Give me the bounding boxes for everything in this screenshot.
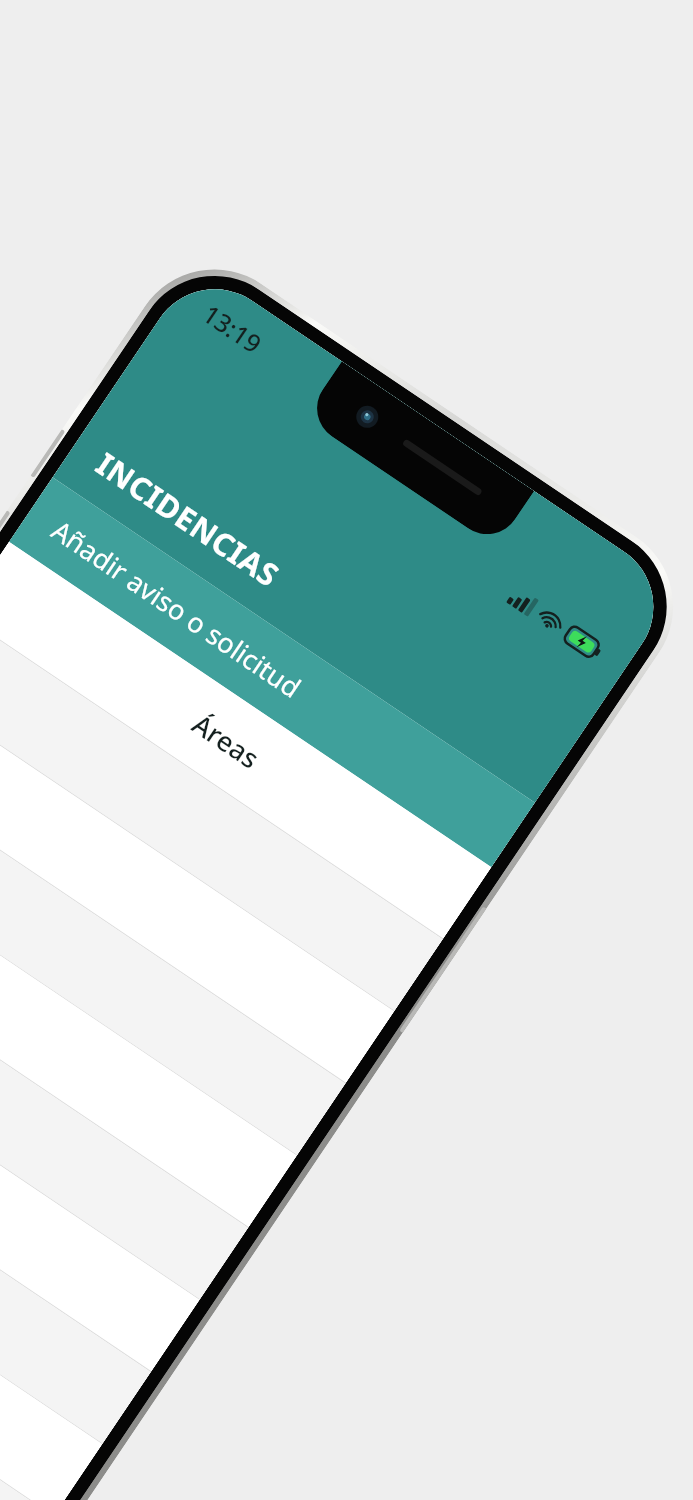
button[interactable] <box>0 686 394 1083</box>
button[interactable] <box>0 758 345 1155</box>
button[interactable] <box>0 1047 151 1443</box>
button[interactable] <box>0 1119 102 1500</box>
button[interactable] <box>0 614 443 1011</box>
button[interactable] <box>0 830 297 1227</box>
button[interactable] <box>0 1191 54 1500</box>
button[interactable] <box>0 975 199 1371</box>
button[interactable] <box>0 902 248 1299</box>
button[interactable]: Añadir aviso o solicitud <box>9 477 535 867</box>
staticText: Áreas <box>186 705 267 777</box>
staticText: 13:19 <box>196 296 269 361</box>
button[interactable]: Áreas <box>0 542 491 939</box>
staticText: Añadir aviso o solicitud <box>45 511 309 706</box>
staticText: INCIDENCIAS <box>89 443 288 596</box>
button[interactable] <box>0 1263 5 1500</box>
